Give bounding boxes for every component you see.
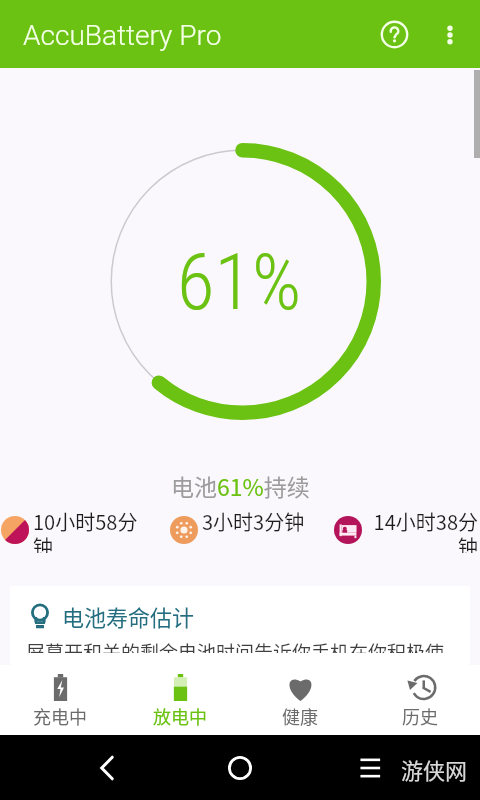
- staticText: 电池61%持续: [171, 469, 310, 502]
- staticText: 61%: [177, 238, 302, 328]
- button[interactable]: Back: [77, 735, 137, 800]
- staticText: 放电中: [153, 703, 207, 729]
- button[interactable]: 3小时3分钟: [170, 507, 332, 536]
- staticText: 历史: [402, 703, 438, 729]
- staticText: 屏幕开和关的剩余电池时间告诉你手机在你积极使用时和待机时还能坚持多久。: [26, 638, 458, 653]
- button[interactable]: Help: [367, 7, 422, 62]
- button[interactable]: 14小时38分钟: [334, 507, 478, 553]
- button[interactable]: 健康: [240, 665, 360, 735]
- staticText: 14小时38分钟: [366, 507, 478, 553]
- staticText: 游侠网: [401, 753, 468, 785]
- button[interactable]: 历史: [360, 665, 480, 735]
- staticText: 3小时3分钟: [202, 507, 332, 536]
- staticText: 10小时58分钟: [33, 507, 145, 553]
- staticText: AccuBattery Pro: [23, 19, 222, 52]
- button[interactable]: Recent apps: [341, 735, 401, 800]
- button[interactable]: 10小时58分钟: [1, 507, 145, 553]
- button[interactable]: More options: [423, 8, 476, 61]
- staticText: 健康: [282, 703, 318, 729]
- button[interactable]: 充电中: [0, 665, 120, 735]
- button[interactable]: Home: [210, 735, 270, 800]
- button[interactable]: 电池寿命估计: [10, 586, 470, 665]
- staticText: 电池寿命估计: [62, 600, 195, 632]
- staticText: 充电中: [33, 703, 87, 729]
- button[interactable]: 放电中: [120, 665, 240, 735]
